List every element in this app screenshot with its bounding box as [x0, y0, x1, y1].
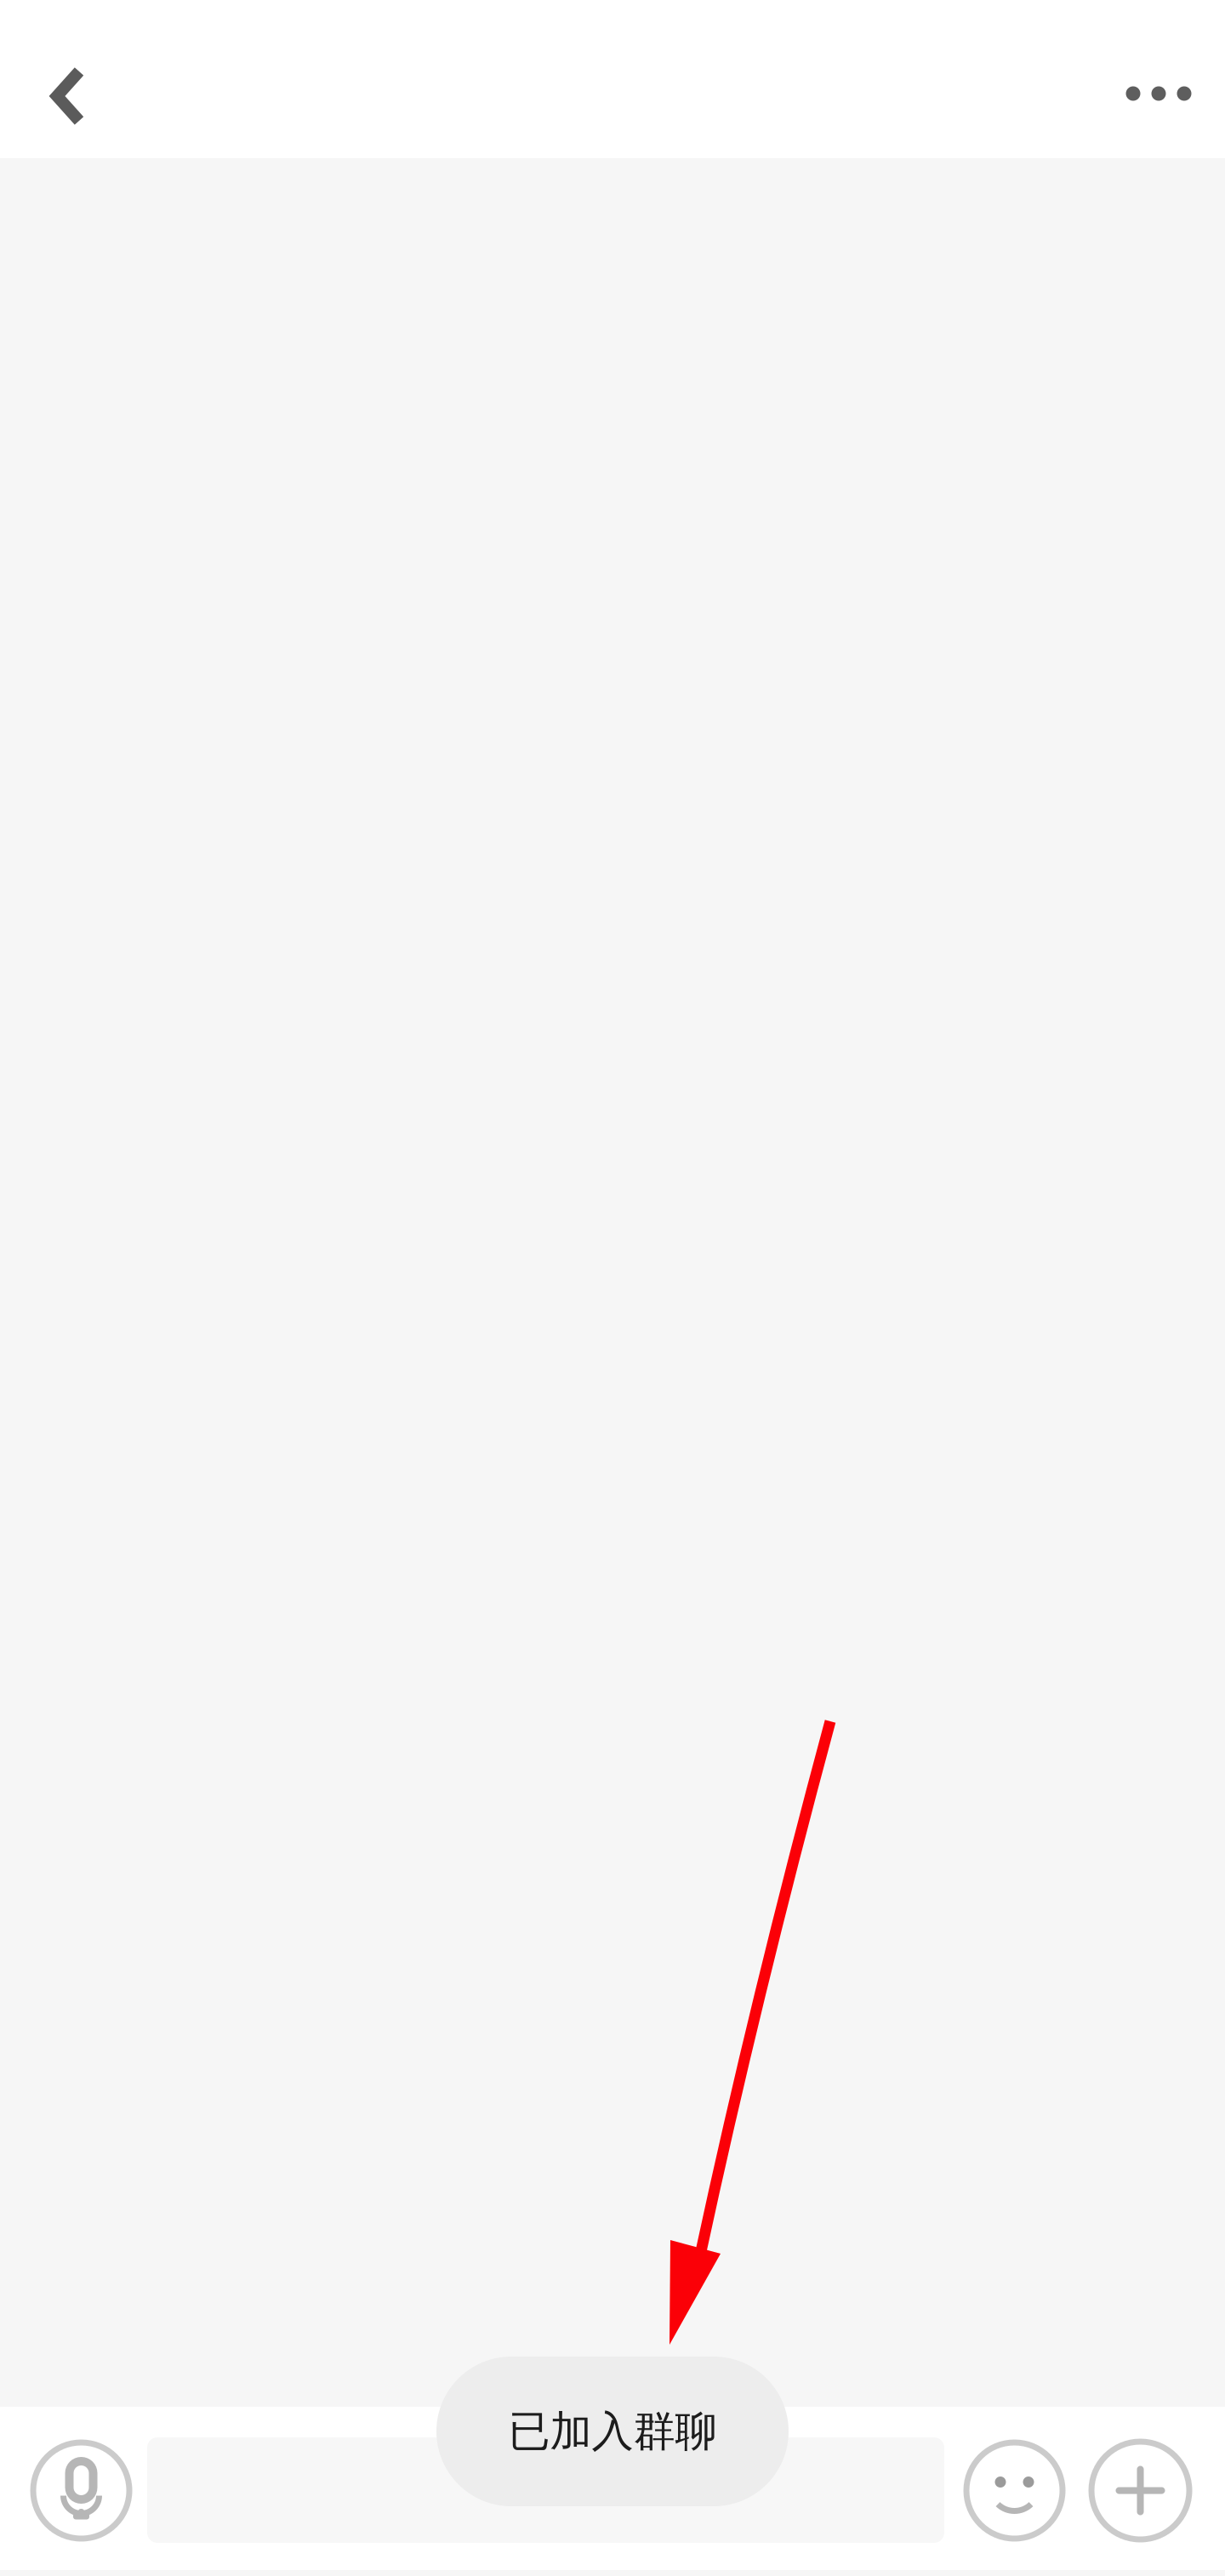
button[interactable]: Emoji — [966, 2442, 1063, 2539]
button[interactable]: Message — [147, 2437, 944, 2543]
button[interactable]: More options — [1091, 2442, 1189, 2539]
button[interactable]: More — [1103, 38, 1214, 149]
button[interactable]: Hold to talk — [33, 2442, 129, 2539]
staticText: 已加入群聊 — [508, 2406, 717, 2457]
button[interactable]: Back — [13, 41, 123, 151]
